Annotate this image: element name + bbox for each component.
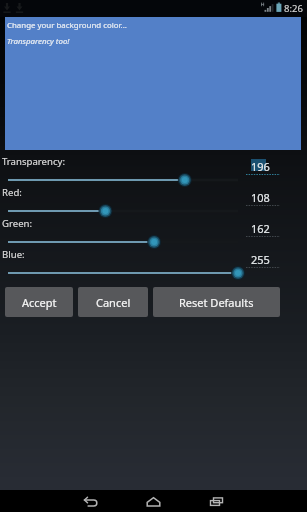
- button[interactable]: Accept: [5, 287, 73, 317]
- button[interactable]: Back: [75, 490, 105, 512]
- staticText: Change your background color...: [7, 20, 127, 31]
- staticText: 255: [251, 252, 270, 267]
- button[interactable]: Reset Defaults: [153, 287, 280, 317]
- staticText: Accept: [22, 295, 57, 310]
- button[interactable]: Home: [138, 490, 168, 512]
- button[interactable]: value 162: [244, 214, 284, 242]
- staticText: 196: [251, 159, 270, 174]
- staticText: Transparency:: [2, 155, 65, 168]
- button[interactable]: Red: slider: [0, 201, 246, 221]
- button[interactable]: Blue: slider: [0, 263, 246, 283]
- staticText: Transparency too!: [7, 36, 70, 47]
- staticText: Red:: [2, 186, 22, 199]
- staticText: Cancel: [96, 295, 131, 310]
- staticText: Reset Defaults: [179, 295, 254, 310]
- staticText: 8:26: [284, 2, 303, 15]
- button[interactable]: value 196: [244, 152, 284, 180]
- staticText: 108: [251, 190, 270, 205]
- button[interactable]: Recent apps: [201, 490, 231, 512]
- button[interactable]: Transparency: slider: [0, 170, 246, 190]
- button[interactable]: value 108: [244, 183, 284, 211]
- button[interactable]: Green: slider: [0, 232, 246, 252]
- button[interactable]: Cancel: [78, 287, 148, 317]
- staticText: Blue:: [2, 248, 25, 261]
- button[interactable]: value 255: [244, 245, 284, 273]
- staticText: 162: [251, 221, 270, 236]
- staticText: Green:: [2, 217, 33, 230]
